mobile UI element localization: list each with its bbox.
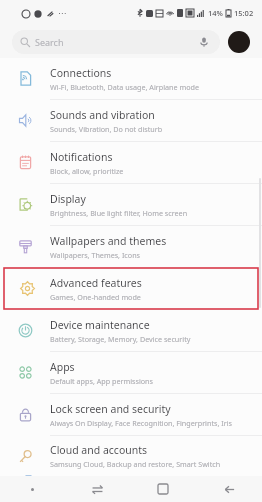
staticText: Connections <box>50 66 112 80</box>
staticText: Apps <box>50 360 75 374</box>
staticText: Advanced features <box>50 276 142 290</box>
staticText: ⋯ <box>58 9 66 18</box>
staticText: Brightness, Blue light filter, Home scre… <box>50 208 188 218</box>
staticText: Sounds and vibration <box>50 108 155 122</box>
staticText: Search <box>35 36 64 48</box>
button[interactable]: Connections <box>0 58 262 99</box>
button[interactable]: Account <box>228 31 250 53</box>
staticText: Default apps, App permissions <box>50 376 153 386</box>
staticText: 14% <box>208 8 223 18</box>
staticText: Always On Display, Face Recognition, Fin… <box>50 418 232 428</box>
button[interactable]: Home <box>130 476 196 502</box>
button[interactable]: Voice search <box>197 35 211 49</box>
staticText: Sounds, Vibration, Do not disturb <box>50 124 163 134</box>
button[interactable]: Search <box>12 30 220 54</box>
staticText: Device maintenance <box>50 318 150 332</box>
staticText: Lock screen and security <box>50 402 171 416</box>
staticText: Display <box>50 192 86 206</box>
button[interactable]: Device maintenance <box>0 310 262 351</box>
staticText: Wi-Fi, Bluetooth, Data usage, Airplane m… <box>50 82 199 92</box>
staticText: 15:02 <box>234 8 254 18</box>
button[interactable]: Advanced features <box>4 268 258 309</box>
button[interactable]: Sounds and vibration <box>0 100 262 141</box>
staticText: Games, One-handed mode <box>50 292 141 302</box>
staticText: Notifications <box>50 150 113 164</box>
button[interactable]: Keyboard indicator <box>0 476 65 502</box>
button[interactable]: Wallpapers and themes <box>0 226 262 267</box>
staticText: Block, allow, prioritize <box>50 166 124 176</box>
staticText: Samsung Cloud, Backup and restore, Smart… <box>50 459 221 469</box>
button[interactable]: Display <box>0 184 262 225</box>
staticText: Battery, Storage, Memory, Device securit… <box>50 334 191 344</box>
button[interactable]: Back <box>196 476 262 502</box>
staticText: Cloud and accounts <box>50 443 148 457</box>
staticText: Wallpapers, Themes, Icons <box>50 250 141 260</box>
button[interactable]: Recents <box>65 476 130 502</box>
button[interactable]: Apps <box>0 352 262 393</box>
staticText: Wallpapers and themes <box>50 234 167 248</box>
button[interactable]: Cloud and accounts <box>0 436 262 476</box>
button[interactable]: Notifications <box>0 142 262 183</box>
button[interactable]: Lock screen and security <box>0 394 262 435</box>
